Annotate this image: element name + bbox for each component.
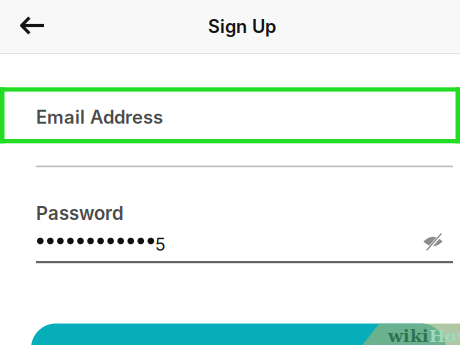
staticText: Password <box>36 202 124 224</box>
staticText: Email Address <box>36 106 163 128</box>
button[interactable]: Show password <box>416 227 450 255</box>
button[interactable]: Back <box>6 0 58 52</box>
staticText: How <box>429 326 460 345</box>
staticText: Sign Up <box>208 15 276 37</box>
staticText: wiki <box>388 326 429 345</box>
button[interactable] <box>31 323 446 345</box>
staticText: 5 <box>155 234 166 255</box>
